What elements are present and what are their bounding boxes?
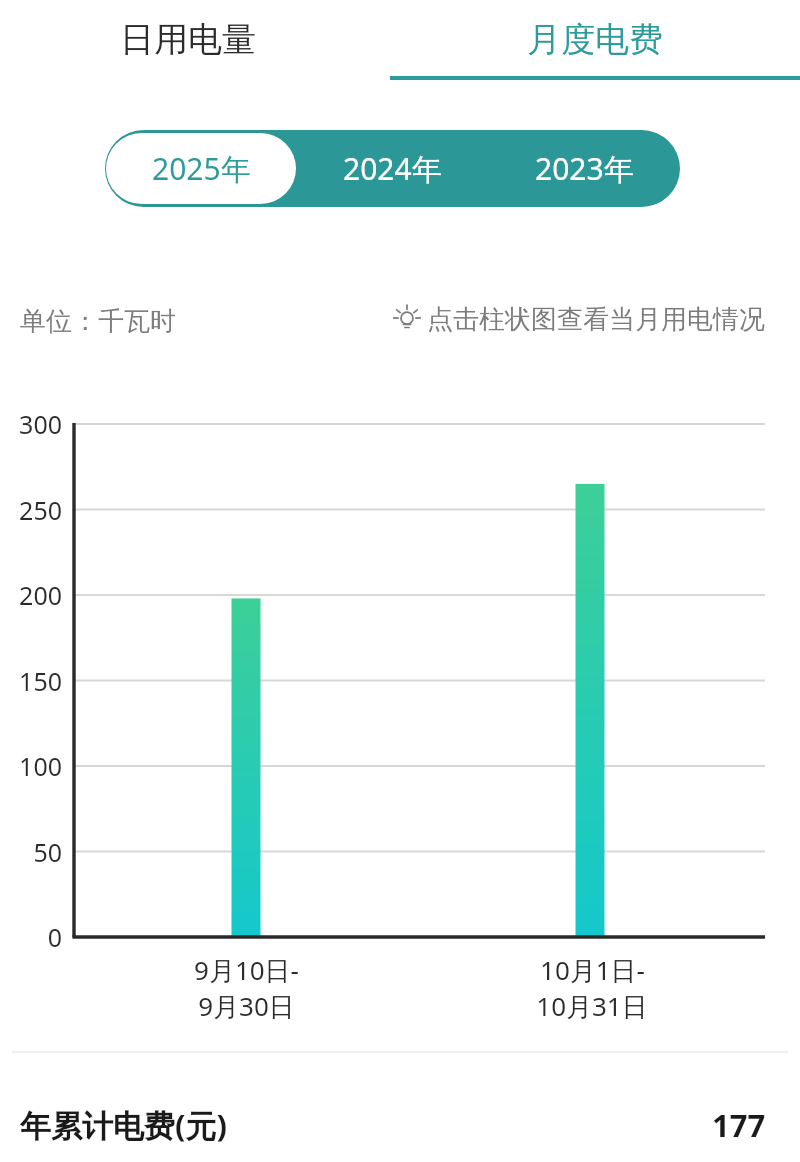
staticText: 50	[33, 835, 62, 869]
staticText: 0	[47, 920, 62, 954]
button[interactable]: 提示	[392, 303, 765, 336]
button[interactable]: 2023年	[488, 130, 680, 207]
staticText: 300	[19, 407, 62, 441]
button[interactable]: 日用电量	[0, 0, 376, 78]
button[interactable]: 10月1日-	[482, 952, 702, 1024]
staticText: 点击柱状图查看当月用电情况	[427, 303, 765, 336]
staticText: 150	[19, 664, 62, 698]
staticText: 日用电量	[120, 18, 256, 61]
staticText: 9月10日-	[194, 952, 299, 988]
staticText: 2025年	[152, 148, 251, 189]
button[interactable]: 月度电费	[390, 0, 800, 78]
staticText: 250	[19, 493, 62, 527]
staticText: 月度电费	[527, 18, 663, 61]
staticText: 200	[19, 578, 62, 612]
staticText: 10月1日-	[540, 952, 645, 988]
staticText: 年累计电费(元)	[20, 1104, 228, 1146]
button[interactable]: 2025年	[105, 130, 297, 207]
staticText: 单位：千瓦时	[20, 305, 176, 338]
staticText: 2023年	[535, 148, 634, 189]
button[interactable]: 9月10日-	[136, 952, 356, 1024]
staticText: 9月30日	[198, 988, 295, 1024]
staticText: 10月31日	[536, 988, 648, 1024]
staticText: 2024年	[343, 148, 442, 189]
button[interactable]: 年累计电费(元)	[0, 1095, 800, 1155]
button[interactable]: 2024年	[297, 130, 488, 207]
other: 提示	[392, 305, 422, 335]
staticText: 100	[19, 749, 62, 783]
staticText: 177	[712, 1104, 766, 1146]
